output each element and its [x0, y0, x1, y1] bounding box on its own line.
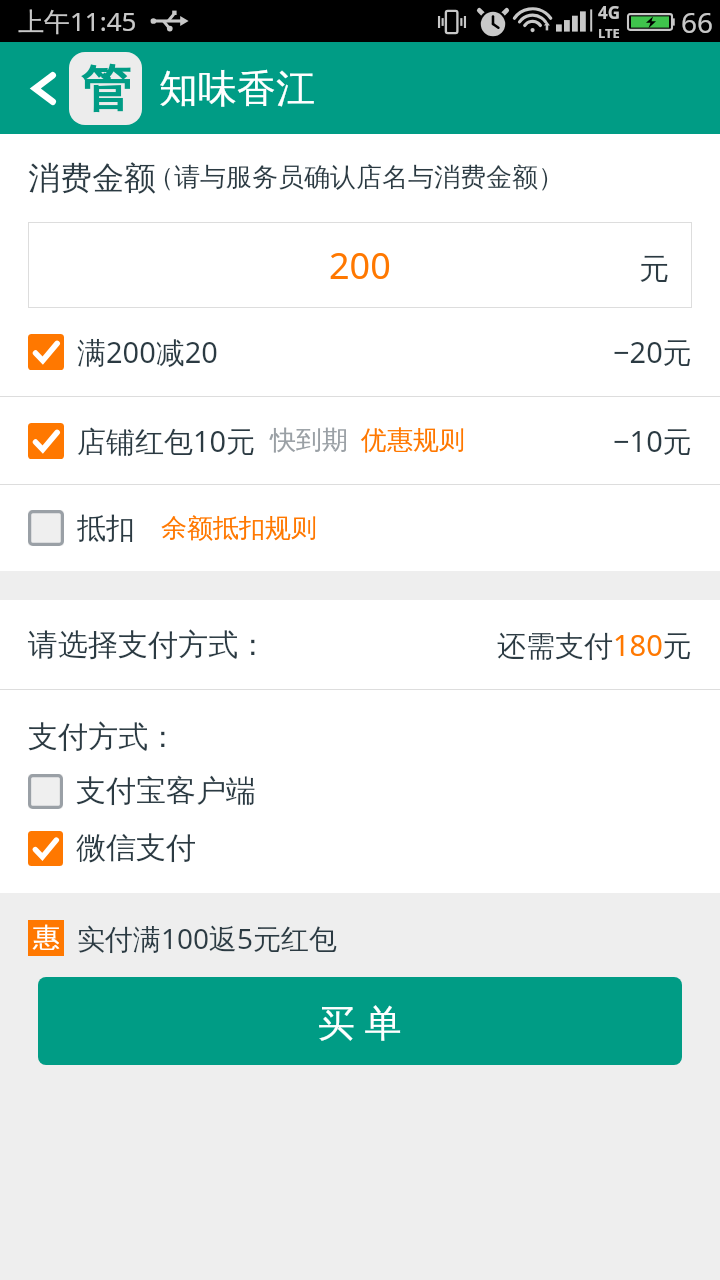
button[interactable]: 支付宝客户端	[0, 772, 720, 810]
button[interactable]: Back	[0, 42, 69, 134]
staticText: 微信支付	[76, 829, 196, 867]
staticText: 4G	[598, 1, 621, 24]
staticText: 买 单	[318, 996, 402, 1047]
button[interactable]: 余额抵扣规则	[161, 512, 317, 545]
button[interactable]: 优惠规则	[361, 424, 465, 457]
staticText: 满200减20	[77, 332, 218, 372]
button[interactable]: 200	[28, 222, 692, 308]
button[interactable]: 买 单	[38, 977, 682, 1065]
staticText: 管	[81, 58, 131, 121]
staticText: 还需支付180元	[497, 625, 692, 665]
staticText: 快到期	[270, 424, 348, 457]
staticText: 66	[681, 3, 714, 41]
staticText: 元	[639, 250, 669, 288]
staticText: 上午11:45	[18, 3, 137, 39]
staticText: 店铺红包10元	[77, 421, 256, 461]
staticText: 抵扣	[77, 510, 135, 547]
staticText: 支付宝客户端	[76, 772, 256, 810]
staticText: 实付满100返5元红包	[77, 919, 338, 957]
staticText: 知味香江	[159, 64, 315, 113]
staticText: 200	[329, 241, 391, 290]
staticText: LTE	[598, 24, 620, 42]
staticText: 请选择支付方式：	[28, 626, 268, 664]
button[interactable]: 满200减20	[0, 308, 720, 396]
staticText: 消费金额	[28, 158, 156, 196]
button[interactable]: 抵扣	[0, 485, 720, 571]
button[interactable]: 店铺红包10元	[0, 397, 720, 484]
staticText: −10元	[613, 421, 692, 461]
staticText: 支付方式：	[28, 718, 178, 756]
staticText: −20元	[613, 332, 692, 372]
staticText: （请与服务员确认店名与消费金额）	[148, 161, 564, 194]
staticText: 惠	[33, 921, 60, 955]
button[interactable]: 微信支付	[0, 829, 720, 867]
